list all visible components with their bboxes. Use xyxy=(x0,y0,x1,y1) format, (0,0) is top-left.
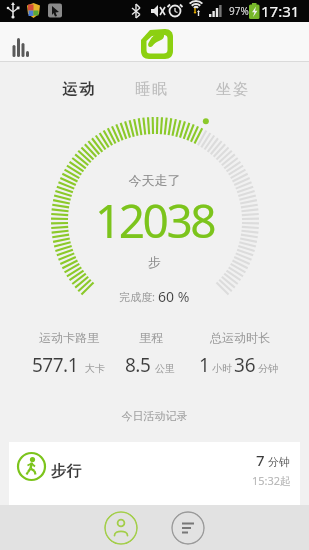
staticText: 1 xyxy=(199,352,210,378)
button[interactable]: 睡眠 xyxy=(121,70,181,108)
staticText: 15:32起 xyxy=(252,473,292,488)
staticText: 97% xyxy=(229,4,249,18)
staticText: 17:31 xyxy=(261,1,300,21)
button[interactable] xyxy=(139,27,175,63)
staticText: 今日活动记录 xyxy=(0,409,309,423)
button[interactable] xyxy=(171,511,205,545)
staticText: 里程 xyxy=(139,330,163,345)
button[interactable]: 坐姿 xyxy=(202,70,262,108)
staticText: 运动卡路里 xyxy=(39,330,99,345)
staticText: 大卡 xyxy=(85,362,105,375)
staticText: 总运动时长 xyxy=(210,330,270,345)
button[interactable]: 步行 xyxy=(9,442,300,505)
staticText: 完成度: xyxy=(119,289,158,304)
staticText: 睡眠 xyxy=(134,80,168,99)
staticText: 577.1 xyxy=(32,352,79,378)
staticText: 今天走了 xyxy=(0,172,309,188)
staticText: 12038 xyxy=(0,189,309,252)
staticText: 小时 xyxy=(212,362,232,375)
button[interactable]: 运动 xyxy=(48,70,108,108)
staticText: 步行 xyxy=(50,462,82,481)
staticText: 60 % xyxy=(158,287,190,306)
staticText: 分钟 xyxy=(258,362,278,375)
staticText: 36 xyxy=(234,352,256,378)
staticText: 坐姿 xyxy=(215,80,249,99)
staticText: 公里 xyxy=(155,362,175,375)
staticText: 分钟 xyxy=(268,455,290,469)
staticText: 7 xyxy=(256,450,265,470)
staticText: 步 xyxy=(0,254,309,270)
button[interactable] xyxy=(0,22,44,62)
staticText: 运动 xyxy=(61,80,95,99)
staticText: 8.5 xyxy=(125,352,151,378)
button[interactable] xyxy=(104,511,138,545)
